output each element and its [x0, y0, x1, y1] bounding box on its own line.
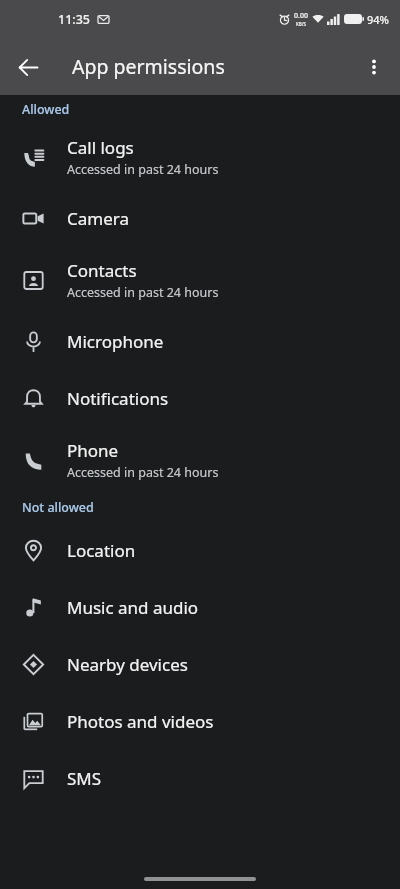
staticText: Music and audio [67, 596, 199, 619]
staticText: Not allowed [22, 499, 94, 516]
staticText: KB/S [296, 21, 306, 27]
staticText: Accessed in past 24 hours [67, 284, 219, 301]
staticText: 94% [367, 12, 389, 27]
staticText: App permissions [72, 53, 225, 80]
staticText: 0.00 [294, 11, 308, 21]
button[interactable]: Nearby devices [0, 636, 400, 693]
button[interactable]: Camera [0, 190, 400, 247]
button[interactable]: Location [0, 522, 400, 579]
button[interactable]: Photos and videos [0, 693, 400, 750]
staticText: 11:35 [58, 11, 91, 28]
button[interactable]: More options [352, 45, 396, 89]
staticText: Phone [67, 439, 119, 462]
button[interactable]: Music and audio [0, 579, 400, 636]
staticText: Nearby devices [67, 653, 188, 676]
staticText: Location [67, 539, 136, 562]
staticText: Allowed [22, 101, 70, 118]
button[interactable]: Back [6, 45, 50, 89]
staticText: Microphone [67, 330, 164, 353]
staticText: Notifications [67, 387, 169, 410]
staticText: Contacts [67, 259, 137, 282]
button[interactable]: Phone [0, 427, 400, 493]
staticText: SMS [67, 767, 102, 790]
staticText: Camera [67, 207, 129, 230]
button[interactable]: Call logs [0, 124, 400, 190]
button[interactable]: Microphone [0, 313, 400, 370]
staticText: Accessed in past 24 hours [67, 161, 219, 178]
button[interactable]: Contacts [0, 247, 400, 313]
button[interactable]: SMS [0, 750, 400, 807]
staticText: Call logs [67, 136, 134, 159]
staticText: Photos and videos [67, 710, 214, 733]
staticText: Accessed in past 24 hours [67, 464, 219, 481]
button[interactable]: Notifications [0, 370, 400, 427]
